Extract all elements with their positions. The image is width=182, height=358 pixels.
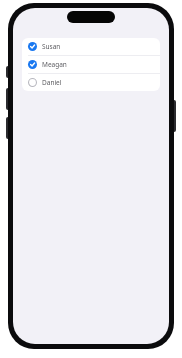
staticText: Meagan xyxy=(42,60,67,69)
other: Selected xyxy=(28,60,37,69)
staticText: Susan xyxy=(42,42,61,51)
other: Selected xyxy=(28,42,37,51)
button[interactable]: Selected xyxy=(22,56,160,73)
other: Not selected xyxy=(28,78,37,87)
button[interactable]: Selected xyxy=(22,38,160,55)
button[interactable]: Not selected xyxy=(22,74,160,91)
staticText: Daniel xyxy=(42,78,62,87)
